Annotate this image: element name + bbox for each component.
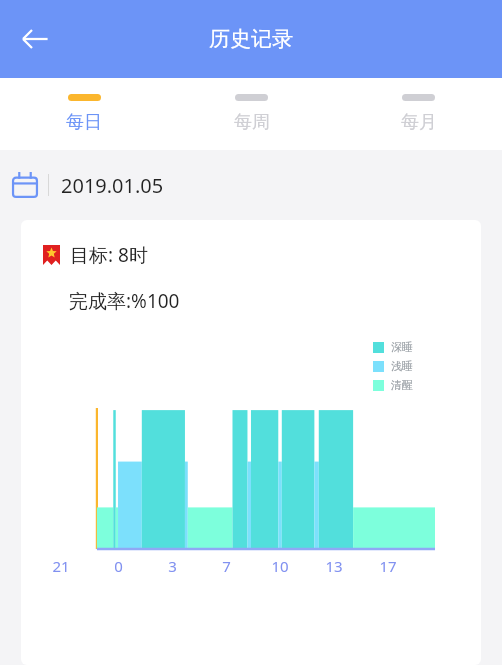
staticText: 深睡 — [391, 340, 413, 354]
button[interactable]: 每周 — [168, 78, 335, 150]
button[interactable]: Back — [8, 12, 62, 66]
staticText: 0 — [114, 556, 123, 576]
staticText: 每日 — [66, 111, 102, 134]
staticText: 7 — [222, 556, 231, 576]
button[interactable]: 目标: 8时 — [21, 220, 481, 665]
staticText: 21 — [52, 556, 70, 576]
staticText: 10 — [271, 556, 289, 576]
button[interactable]: 每月 — [335, 78, 502, 150]
button[interactable]: 每日 — [0, 78, 168, 150]
staticText: 17 — [379, 556, 397, 576]
staticText: 目标: 8时 — [70, 242, 148, 268]
staticText: 2019.01.05 — [61, 172, 164, 199]
staticText: 清醒 — [391, 378, 413, 392]
staticText: 13 — [325, 556, 343, 576]
staticText: 每月 — [401, 111, 437, 134]
staticText: 历史记录 — [209, 26, 293, 52]
staticText: 每周 — [234, 111, 270, 134]
staticText: 完成率:%100 — [69, 288, 180, 314]
staticText: 浅睡 — [391, 359, 413, 373]
staticText: 3 — [168, 556, 177, 576]
